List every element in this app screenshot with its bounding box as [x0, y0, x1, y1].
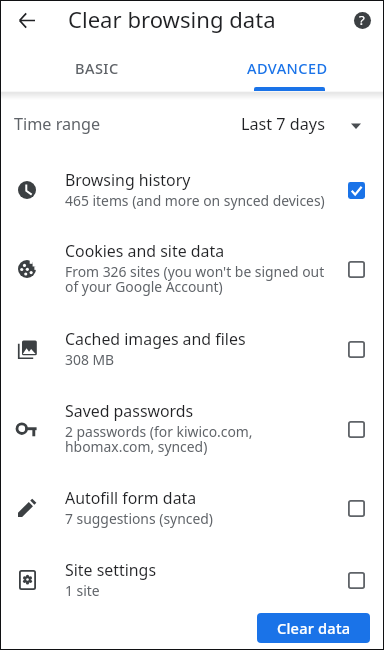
button[interactable]: Site settings [1, 544, 383, 616]
button[interactable]: Cached images and files [340, 313, 372, 385]
staticText: Last 7 days [241, 113, 325, 135]
button[interactable]: Saved passwords [340, 385, 372, 473]
staticText: 308 MB [65, 350, 115, 369]
button[interactable]: Clear data [257, 613, 370, 643]
staticText: From 326 sites (you won't be signed out … [65, 262, 325, 296]
staticText: Browsing history [65, 169, 191, 191]
button[interactable]: Autofill form data [340, 472, 372, 544]
staticText: 2 passwords (for kiwico.com, hbomax.com,… [65, 422, 253, 456]
staticText: ADVANCED [247, 58, 328, 78]
button[interactable]: Cached images and files [1, 313, 383, 385]
staticText: Autofill form data [65, 487, 197, 509]
staticText: Cached images and files [65, 328, 246, 350]
button[interactable]: ADVANCED [192, 47, 383, 92]
staticText: 465 items (and more on synced devices) [65, 191, 325, 210]
button[interactable]: Site settings [340, 544, 372, 616]
staticText: BASIC [75, 58, 119, 78]
button[interactable]: Back [8, 2, 45, 39]
staticText: Saved passwords [65, 400, 194, 422]
staticText: Time range [14, 113, 101, 135]
button[interactable]: Help [346, 4, 378, 36]
button[interactable]: Cookies and site data [340, 225, 372, 313]
button[interactable]: Time range [1, 92, 383, 156]
staticText: Site settings [65, 559, 157, 581]
staticText: 1 site [65, 581, 100, 600]
staticText: ? [359, 11, 365, 29]
button[interactable]: Browsing history [340, 154, 372, 226]
button[interactable]: Cookies and site data [1, 225, 383, 313]
staticText: Clear browsing data [68, 4, 276, 34]
button[interactable]: Autofill form data [1, 472, 383, 544]
staticText: 7 suggestions (synced) [65, 509, 213, 528]
button[interactable]: BASIC [1, 47, 192, 92]
staticText: Clear data [277, 618, 351, 638]
button[interactable]: Browsing history [1, 154, 383, 226]
staticText: Cookies and site data [65, 240, 225, 262]
button[interactable]: Saved passwords [1, 385, 383, 473]
